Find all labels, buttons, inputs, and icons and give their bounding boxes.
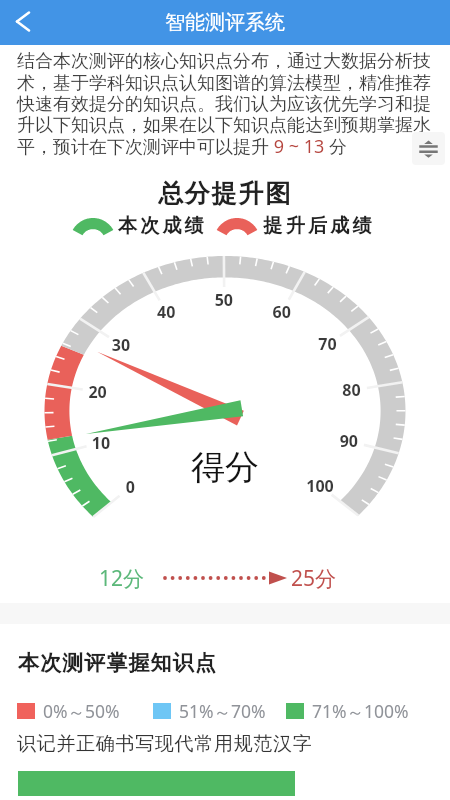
staticText: 识记并正确书写现代常用规范汉字 [17,732,313,756]
staticText: 25分 [291,564,337,593]
staticText: 结合本次测评的核心知识点分布，通过大数据分析技术，基于学科知识点认知图谱的算法模… [17,50,436,158]
button[interactable]: Back [0,0,45,45]
button[interactable]: Scroll to section [412,132,445,165]
staticText: 51%～70% [179,699,266,723]
staticText: 本次成绩 [118,214,207,238]
staticText: 12分 [99,564,145,593]
staticText: 总分提升图 [0,178,450,209]
staticText: 0%～50% [43,699,120,723]
staticText: 提升后成绩 [262,214,373,238]
staticText: 本次测评掌握知识点 [18,650,217,676]
staticText: 71%～100% [312,699,409,723]
staticText: 智能测评系统 [165,10,285,35]
